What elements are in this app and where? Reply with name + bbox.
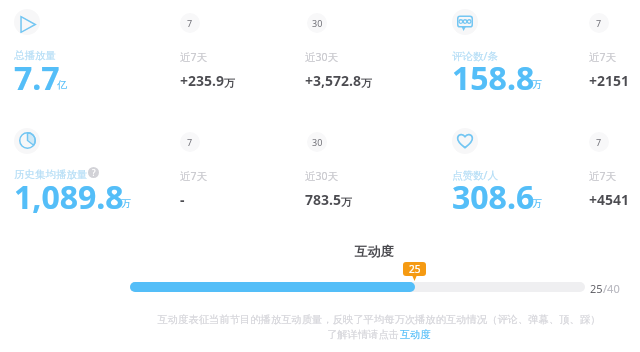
staticText: 万	[361, 76, 372, 90]
button[interactable]: Comments	[452, 9, 478, 35]
button[interactable]: Total plays	[14, 9, 40, 35]
button[interactable]: 30	[307, 13, 327, 33]
staticText: 7	[187, 136, 193, 148]
staticText: 308.6	[452, 175, 535, 219]
staticText: +4541	[589, 190, 630, 209]
staticText: 7.7	[14, 56, 60, 100]
staticText: 783.5	[305, 190, 341, 209]
staticText: 万	[121, 197, 131, 210]
staticText: 1,089.8	[14, 175, 124, 219]
button[interactable]: Likes	[452, 128, 478, 154]
staticText: 互动度	[108, 243, 640, 259]
staticText: 互动度表征当前节目的播放互动质量，反映了平均每万次播放的互动情况（评论、弹幕、顶…	[115, 313, 640, 326]
staticText: 亿	[57, 78, 67, 91]
button[interactable]: 7	[180, 13, 200, 33]
staticText: 评论数/条	[452, 49, 498, 63]
staticText: 158.8	[452, 56, 535, 100]
staticText: +2151	[589, 71, 630, 90]
button[interactable]: 7	[180, 132, 200, 152]
staticText: 30	[312, 17, 323, 29]
staticText: 近7天	[589, 50, 617, 64]
staticText: /40	[603, 281, 620, 296]
staticText: 点赞数/人	[452, 168, 498, 182]
staticText: +235.9	[180, 71, 224, 90]
staticText: ?	[92, 167, 96, 178]
button[interactable]: 互动度	[400, 328, 431, 341]
staticText: 30	[312, 136, 323, 148]
staticText: 总播放量	[14, 49, 56, 62]
button[interactable]: Interaction score 25 of 40	[130, 282, 585, 292]
staticText: 近7天	[180, 50, 208, 64]
staticText: 近30天	[305, 169, 339, 183]
staticText: 了解详情请点击	[327, 328, 400, 341]
button[interactable]: 7	[589, 132, 609, 152]
staticText: 近7天	[589, 169, 617, 183]
staticText: 万	[224, 76, 235, 90]
staticText: 7	[596, 136, 602, 148]
button[interactable]: 7	[589, 13, 609, 33]
staticText: 25	[409, 262, 421, 276]
staticText: 近30天	[305, 50, 339, 64]
staticText: 万	[532, 197, 542, 210]
staticText: 近7天	[180, 169, 208, 183]
staticText: 万	[341, 195, 352, 209]
staticText: 25	[590, 281, 603, 296]
staticText: 万	[532, 78, 542, 91]
staticText: -	[180, 190, 185, 209]
staticText: +3,572.8	[305, 71, 361, 90]
button[interactable]: 30	[307, 132, 327, 152]
staticText: 7	[596, 17, 602, 29]
button[interactable]: Help	[88, 167, 99, 178]
staticText: 7	[187, 17, 193, 29]
staticText: 历史集均播放量	[14, 168, 88, 181]
button[interactable]: Average plays per episode	[14, 128, 40, 154]
